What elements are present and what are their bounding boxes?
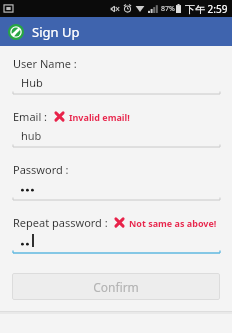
other: App icon <box>8 24 24 40</box>
staticText: Confirm <box>93 279 139 295</box>
staticText: Repeat password : <box>13 215 108 230</box>
staticText: Not same as above! <box>129 217 217 229</box>
staticText: Sign Up <box>32 23 80 41</box>
staticText: Password : <box>13 162 69 177</box>
staticText: User Name : <box>13 56 77 71</box>
staticText: Email : <box>13 109 48 124</box>
staticText: 87% <box>161 4 175 14</box>
staticText: hub <box>21 128 42 143</box>
staticText: 下午 2:59 <box>185 2 228 16</box>
staticText: Invalid email! <box>69 111 130 123</box>
staticText: Hub <box>21 75 43 90</box>
button[interactable]: Confirm <box>12 273 220 300</box>
